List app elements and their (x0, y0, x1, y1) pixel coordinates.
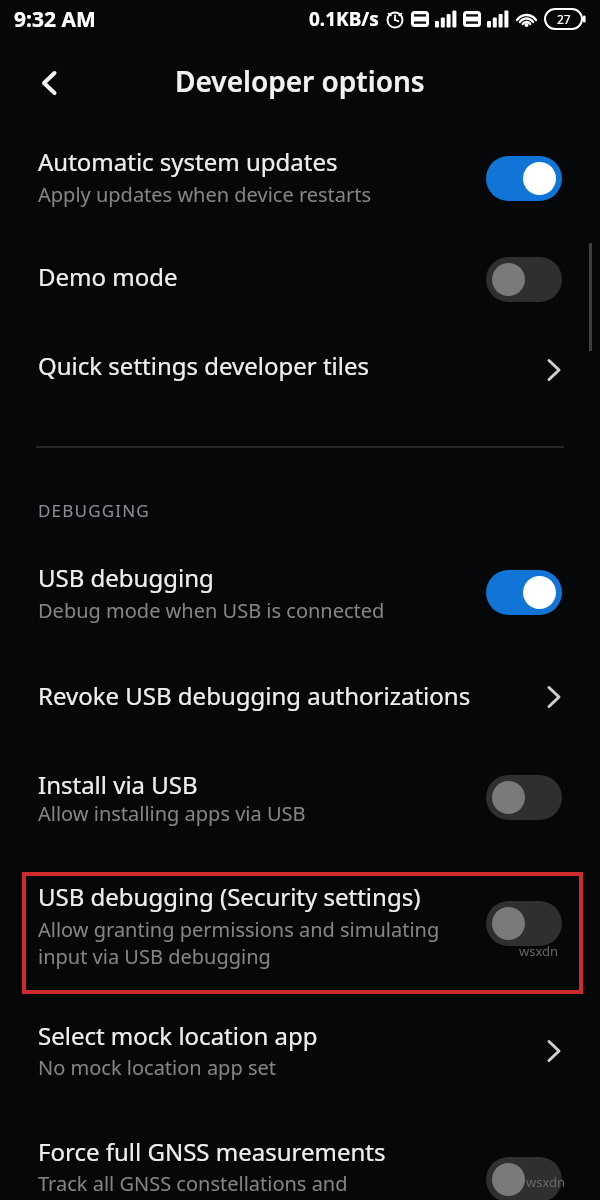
button[interactable] (486, 901, 562, 946)
staticText: Force full GNSS measurements (38, 1135, 386, 1168)
staticText: Install via USB (38, 768, 198, 801)
button[interactable] (0, 752, 600, 844)
button[interactable] (0, 872, 600, 994)
staticText: Quick settings developer tiles (38, 349, 370, 382)
staticText: Select mock location app (38, 1019, 318, 1052)
button[interactable] (0, 248, 600, 314)
staticText: Developer options (175, 62, 425, 100)
staticText: Demo mode (38, 260, 178, 293)
staticText: Track all GNSS constellations and (38, 1170, 348, 1197)
staticText: 0.1KB/s (309, 6, 379, 32)
button[interactable] (486, 156, 562, 201)
staticText: wsxdn (519, 942, 559, 960)
button[interactable] (486, 775, 562, 820)
staticText: 27 (557, 11, 571, 27)
button[interactable] (486, 1157, 562, 1200)
staticText: USB debugging (Security settings) (38, 880, 421, 913)
button[interactable] (0, 1006, 600, 1098)
button[interactable] (0, 336, 600, 404)
staticText: Revoke USB debugging authorizations (38, 679, 471, 712)
button[interactable] (0, 664, 600, 730)
staticText: 9:32 AM (14, 5, 96, 34)
staticText: Debug mode when USB is connected (38, 597, 385, 624)
staticText: No mock location app set (38, 1054, 276, 1081)
button[interactable] (26, 62, 72, 104)
staticText: wsxdn (526, 1173, 566, 1191)
button[interactable] (0, 546, 600, 640)
staticText: DEBUGGING (38, 499, 150, 522)
staticText: Apply updates when device restarts (38, 181, 372, 208)
button[interactable] (486, 570, 562, 615)
button[interactable] (0, 1120, 600, 1200)
staticText: Allow installing apps via USB (38, 800, 306, 827)
staticText: Allow granting permissions and simulatin… (38, 916, 440, 970)
staticText: Automatic system updates (38, 145, 338, 178)
button[interactable] (486, 257, 562, 302)
staticText: USB debugging (38, 561, 214, 594)
button[interactable] (0, 132, 600, 216)
